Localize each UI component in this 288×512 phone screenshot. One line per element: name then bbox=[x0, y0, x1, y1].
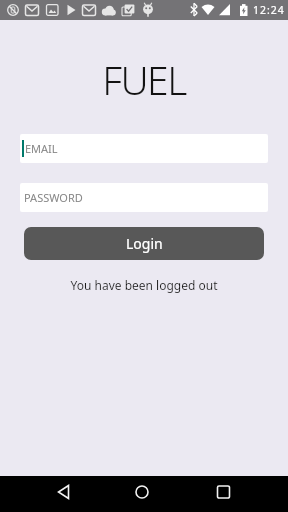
staticText: Login bbox=[126, 234, 163, 253]
staticText: You have been logged out bbox=[0, 277, 288, 293]
staticText: EMAIL bbox=[25, 141, 58, 156]
button[interactable]: EMAIL bbox=[20, 134, 268, 163]
button[interactable] bbox=[0, 476, 96, 512]
button[interactable]: PASSWORD bbox=[20, 183, 268, 212]
button[interactable] bbox=[96, 476, 192, 512]
button[interactable]: Login bbox=[24, 227, 264, 260]
staticText: 12:24 bbox=[253, 3, 285, 17]
button[interactable] bbox=[192, 476, 288, 512]
staticText: FUEL bbox=[0, 53, 288, 106]
staticText: PASSWORD bbox=[24, 190, 83, 205]
